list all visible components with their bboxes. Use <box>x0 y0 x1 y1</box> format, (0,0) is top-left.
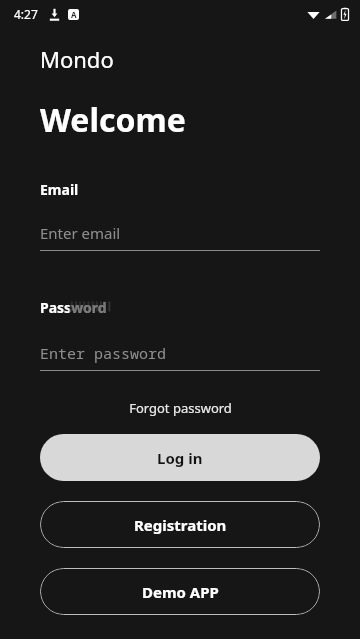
button[interactable]: Enter password <box>40 343 320 363</box>
staticText: Enter password <box>40 343 167 363</box>
staticText: Demo APP <box>142 582 219 602</box>
staticText: Log in <box>157 448 203 468</box>
button[interactable]: Registration <box>40 501 320 548</box>
staticText: Mondo <box>40 44 114 74</box>
button[interactable]: Log in <box>40 434 320 481</box>
staticText: A <box>71 9 77 20</box>
staticText: Welcome <box>40 98 186 142</box>
button[interactable]: Forgot password <box>123 397 238 419</box>
button[interactable]: Enter email <box>40 223 320 243</box>
staticText: 4:27 <box>14 6 38 22</box>
button[interactable]: Demo APP <box>40 568 320 615</box>
staticText: Registration <box>134 515 227 535</box>
staticText: Password <box>40 298 107 317</box>
staticText: Enter email <box>40 223 121 243</box>
staticText: Email <box>40 180 79 199</box>
staticText: Forgot password <box>129 399 232 417</box>
